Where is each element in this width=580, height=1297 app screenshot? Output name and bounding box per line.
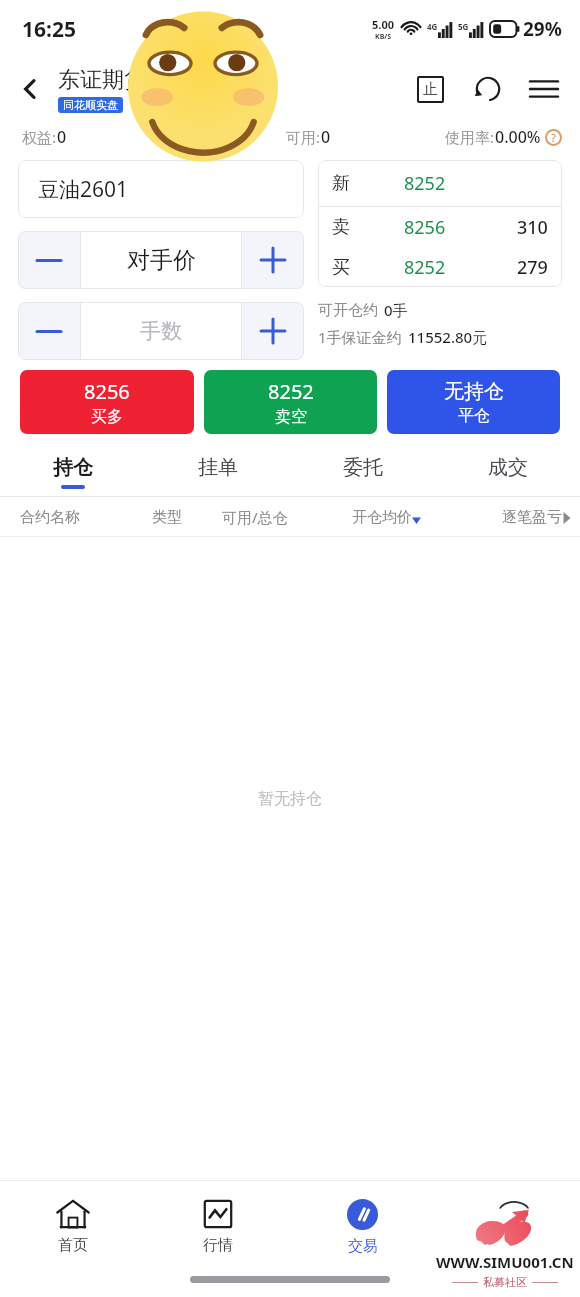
button[interactable]: 8252 bbox=[204, 370, 377, 434]
button[interactable]: Increase price bbox=[242, 231, 304, 289]
staticText: 使用率: bbox=[445, 127, 495, 147]
staticText: 8256 bbox=[404, 215, 446, 240]
staticText: 279 bbox=[517, 255, 548, 280]
staticText: 可用/总仓 bbox=[222, 507, 288, 527]
staticText: 豆油2601 bbox=[38, 175, 129, 204]
button[interactable]: 手数 bbox=[81, 302, 241, 360]
button[interactable]: 豆油2601 bbox=[18, 160, 304, 218]
staticText: 委托 bbox=[343, 455, 383, 480]
staticText: 310 bbox=[517, 215, 548, 240]
button[interactable]: Decrease price bbox=[18, 231, 80, 289]
button[interactable]: 行情 bbox=[145, 1193, 290, 1261]
staticText: 11552.80元 bbox=[408, 327, 488, 347]
staticText: 新 bbox=[332, 172, 350, 195]
staticText: 卖 bbox=[332, 216, 350, 239]
button[interactable]: 成交 bbox=[435, 448, 580, 496]
staticText: KB/S bbox=[375, 32, 392, 42]
staticText: 止 bbox=[423, 80, 438, 99]
staticText: 可用: bbox=[286, 127, 321, 147]
staticText: 8252 bbox=[404, 255, 446, 280]
staticText: 行情 bbox=[203, 1236, 233, 1255]
button[interactable]: Refresh bbox=[466, 67, 510, 111]
staticText: 手数 bbox=[140, 318, 182, 344]
button[interactable]: Increase volume bbox=[242, 302, 304, 360]
staticText: 逐笔盈亏 bbox=[502, 508, 562, 527]
staticText: 交易 bbox=[348, 1237, 378, 1256]
staticText: 4G bbox=[427, 21, 438, 32]
staticText: 29% bbox=[523, 16, 562, 42]
button[interactable]: 持仓 bbox=[0, 448, 145, 496]
staticText: 卖空 bbox=[275, 407, 307, 427]
staticText: 0.00% bbox=[495, 126, 541, 148]
button[interactable]: 对手价 bbox=[81, 231, 241, 289]
button[interactable]: 交易 bbox=[290, 1193, 435, 1262]
staticText: 5G bbox=[458, 21, 469, 32]
staticText: 首页 bbox=[58, 1236, 88, 1255]
staticText: 16:25 bbox=[22, 15, 76, 44]
staticText: 持仓 bbox=[53, 455, 93, 480]
staticText: 成交 bbox=[488, 455, 528, 480]
button[interactable]: Stop bbox=[408, 67, 452, 111]
button[interactable]: 8256 bbox=[20, 370, 194, 434]
staticText: 开仓均价 bbox=[352, 508, 412, 527]
staticText: 5.00 bbox=[372, 17, 394, 32]
staticText: ? bbox=[551, 130, 556, 145]
staticText: WWW.SIMU001.CN bbox=[436, 1252, 574, 1272]
staticText: 合约名称 bbox=[20, 508, 80, 527]
staticText: 东证期货 bbox=[58, 66, 146, 94]
button[interactable]: 委托 bbox=[290, 448, 435, 496]
staticText: 权益: bbox=[22, 127, 57, 147]
button[interactable]: 挂单 bbox=[145, 448, 290, 496]
button[interactable]: 首页 bbox=[0, 1193, 145, 1261]
button[interactable]: Back bbox=[8, 67, 52, 111]
staticText: 0 bbox=[321, 126, 331, 148]
staticText: 8252 bbox=[268, 378, 314, 405]
staticText: 同花顺实盘 bbox=[63, 98, 118, 112]
staticText: 0 bbox=[57, 126, 67, 148]
staticText: 平仓 bbox=[458, 406, 490, 426]
button[interactable]: Menu bbox=[522, 67, 566, 111]
staticText: 0手 bbox=[384, 300, 408, 320]
button[interactable]: 无持仓 bbox=[387, 370, 560, 434]
button[interactable]: 使用率: bbox=[445, 126, 562, 148]
staticText: 买多 bbox=[91, 407, 123, 427]
staticText: 暂无持仓 bbox=[258, 789, 322, 809]
staticText: 对手价 bbox=[127, 246, 196, 275]
staticText: 私募社区 bbox=[483, 1275, 527, 1289]
staticText: 8256 bbox=[84, 378, 130, 405]
staticText: 可开仓约 bbox=[318, 301, 378, 320]
staticText: 买 bbox=[332, 256, 350, 279]
button[interactable]: Decrease volume bbox=[18, 302, 80, 360]
staticText: 1手保证金约 bbox=[318, 327, 402, 347]
staticText: 无持仓 bbox=[444, 379, 504, 404]
staticText: 类型 bbox=[152, 508, 182, 527]
staticText: 8252 bbox=[404, 171, 446, 196]
staticText: 挂单 bbox=[198, 455, 238, 480]
